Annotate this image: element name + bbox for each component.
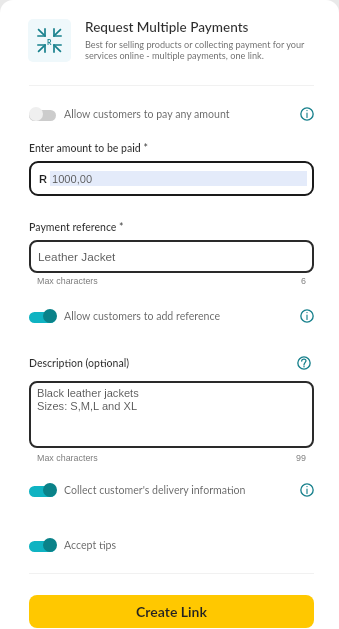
button[interactable]: Allow customers to pay any amount [29,105,314,123]
staticText: Payment reference * [29,221,124,234]
staticText: Leather Jacket [38,250,116,263]
staticText: Max characters [37,453,98,463]
button[interactable]: Black leather jackets [29,381,314,448]
staticText: Collect customer's delivery information [64,484,246,497]
staticText: Description (optional) [29,357,130,370]
staticText: Max characters [37,276,98,286]
staticText: Sizes: S,M,L and XL [37,400,138,412]
button[interactable]: Collect customer's delivery information [29,481,314,499]
staticText: Accept tips [64,539,116,552]
button[interactable]: Help [297,356,311,370]
button[interactable]: Information [300,309,314,323]
staticText: services online - multiple payments, one… [85,50,264,61]
button[interactable]: Information [300,107,314,121]
button[interactable]: Information [300,483,314,497]
staticText: R [39,173,48,185]
button[interactable]: Create Link [29,595,314,628]
staticText: Allow customers to pay any amount [64,108,230,121]
button[interactable]: Allow customers to add reference [29,307,314,325]
staticText: Black leather jackets [37,387,139,399]
button[interactable]: Accept tips [29,536,314,554]
staticText: Best for selling products or collecting … [85,39,305,50]
staticText: Allow customers to add reference [64,310,220,323]
staticText: Request Multiple Payments [85,19,249,35]
button[interactable]: Leather Jacket [29,240,314,273]
button[interactable]: R [29,161,314,196]
staticText: 1000,00 [52,173,93,185]
staticText: 6 [301,276,306,286]
staticText: Create Link [136,603,207,620]
staticText: R [47,38,52,46]
staticText: 99 [296,453,306,463]
staticText: Enter amount to be paid * [29,142,148,155]
